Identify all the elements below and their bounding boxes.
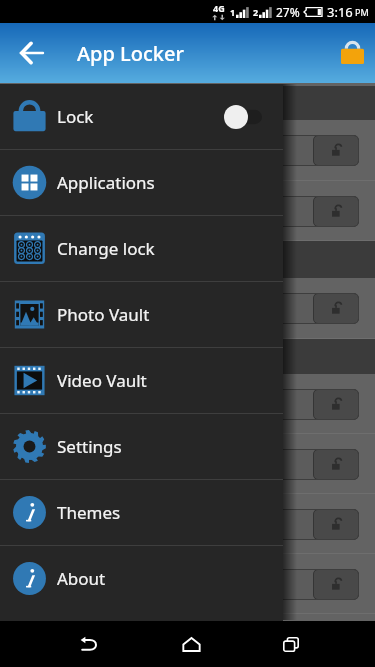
button[interactable]: Settings — [0, 414, 283, 479]
staticText: Lock — [57, 105, 94, 128]
button[interactable]: Photo Vault — [0, 282, 283, 347]
button[interactable]: Back — [10, 31, 54, 75]
staticText: PM — [355, 6, 369, 18]
staticText: 2 — [253, 6, 259, 18]
staticText: 1 — [230, 6, 236, 18]
staticText: Themes — [57, 501, 121, 524]
staticText: Photo Vault — [57, 303, 150, 326]
button[interactable]: Applications — [0, 150, 283, 215]
button[interactable]: About — [0, 546, 283, 611]
button[interactable]: Back — [64, 621, 114, 667]
staticText: 3:16 — [327, 3, 353, 21]
button[interactable]: Home — [166, 621, 216, 667]
button[interactable]: Video Vault — [0, 348, 283, 413]
staticText: 4G — [213, 2, 225, 14]
button[interactable]: Lock toggle — [224, 105, 262, 129]
staticText: About — [57, 567, 106, 590]
button[interactable]: Change lock — [0, 216, 283, 281]
button[interactable]: Lock — [330, 31, 374, 75]
staticText: Video Vault — [57, 369, 147, 392]
staticText: Change lock — [57, 237, 155, 260]
button[interactable]: Lock — [0, 84, 283, 149]
staticText: App Locker — [77, 40, 184, 67]
staticText: Settings — [57, 435, 122, 458]
button[interactable]: Recents — [266, 621, 316, 667]
staticText: 27% — [276, 4, 300, 20]
button[interactable]: Themes — [0, 480, 283, 545]
staticText: Applications — [57, 171, 155, 194]
